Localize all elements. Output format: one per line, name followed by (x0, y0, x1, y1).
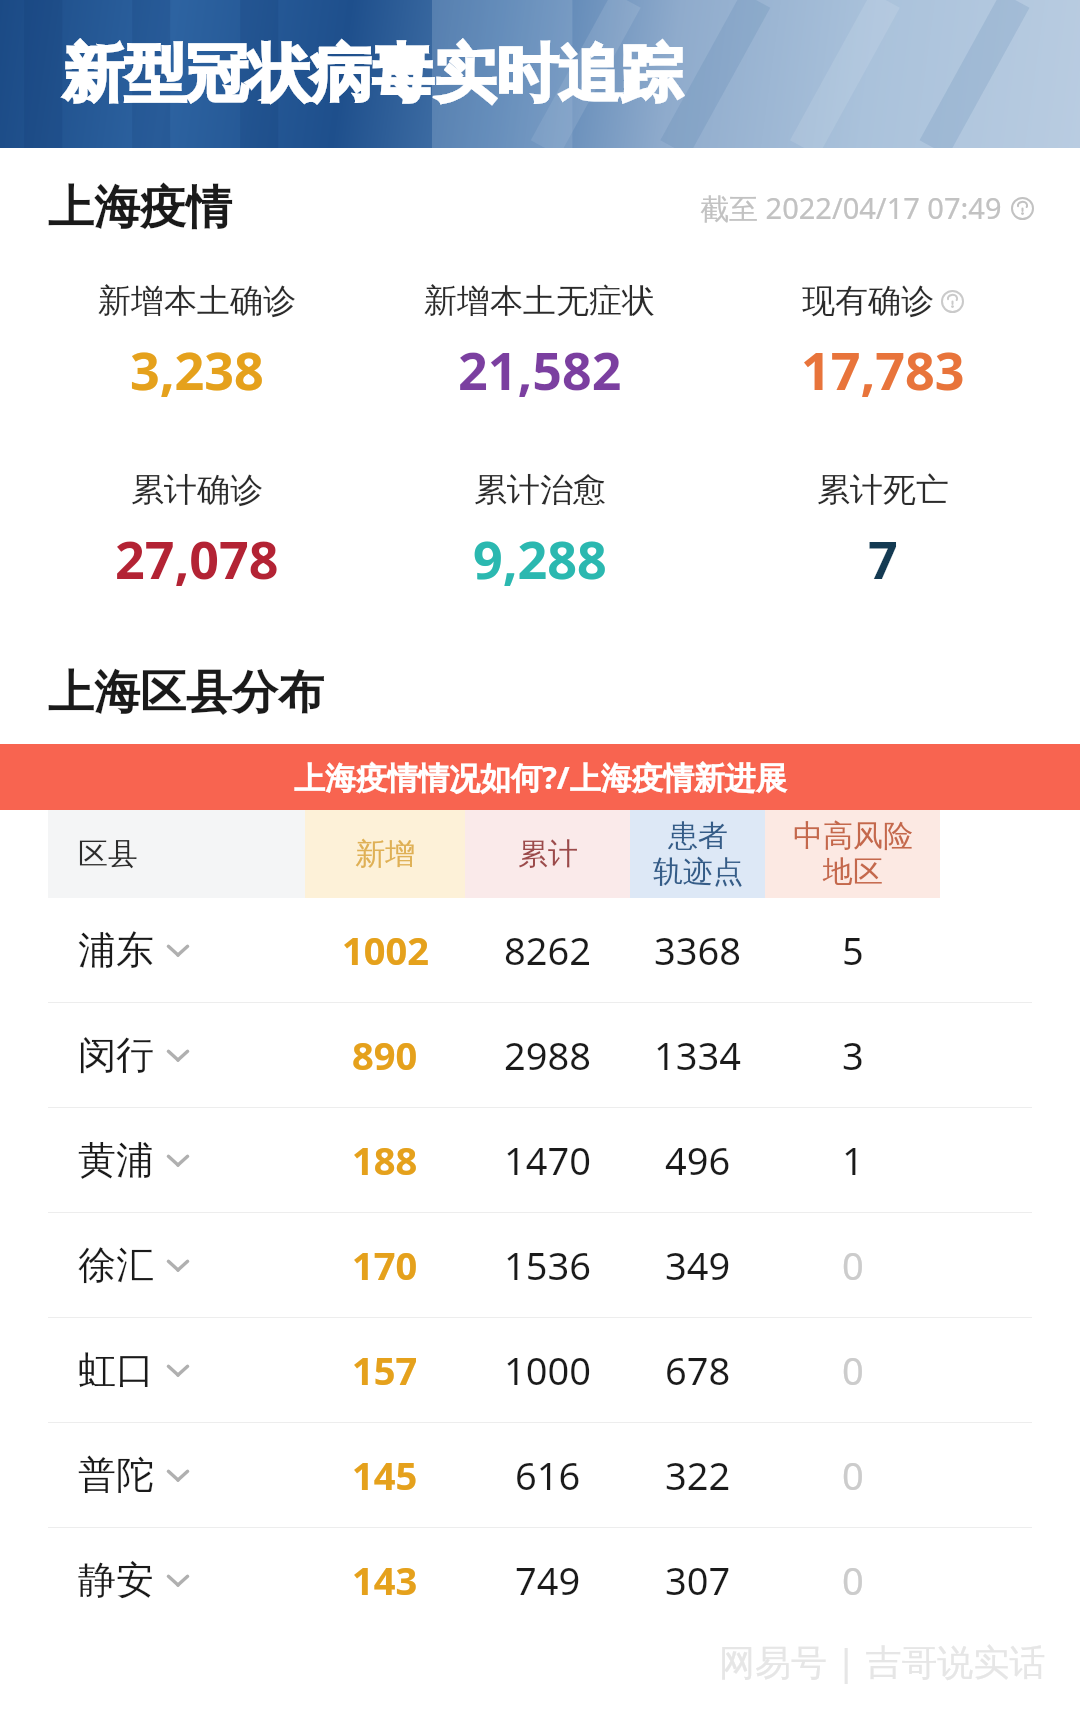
staticText: 0 (842, 1449, 864, 1501)
staticText: 0 (842, 1554, 864, 1606)
staticText: 闵行 (78, 1031, 154, 1079)
button[interactable]: 累计确诊 (26, 469, 368, 594)
staticText: 17,783 (801, 334, 965, 405)
staticText: 145 (352, 1449, 418, 1501)
staticText: 现有确诊 (802, 280, 934, 322)
staticText: 徐汇 (78, 1241, 154, 1289)
button[interactable]: 截至 2022/04/17 07:49 (700, 188, 1034, 228)
staticText: 749 (515, 1554, 581, 1606)
staticText: 7 (868, 523, 898, 594)
staticText: 307 (665, 1554, 731, 1606)
staticText: 新增本土确诊 (98, 280, 296, 322)
button[interactable]: 静安 (0, 1528, 1080, 1632)
staticText: 上海疫情 (48, 179, 232, 237)
button[interactable]: 黄浦 (0, 1108, 1080, 1212)
staticText: 1334 (654, 1029, 741, 1081)
staticText: 9,288 (473, 523, 607, 594)
button[interactable]: 说明 (941, 290, 964, 313)
staticText: 0 (842, 1344, 864, 1396)
staticText: 累计 (518, 835, 578, 873)
staticText: 区县 (78, 835, 138, 873)
button[interactable]: 累计治愈 (368, 469, 711, 594)
staticText: 1002 (342, 924, 429, 976)
button[interactable]: 虹口 (0, 1318, 1080, 1422)
staticText: 1000 (504, 1344, 591, 1396)
staticText: 322 (665, 1449, 731, 1501)
button[interactable]: 闵行 (0, 1003, 1080, 1107)
staticText: 143 (352, 1554, 418, 1606)
staticText: 349 (665, 1239, 731, 1291)
staticText: 浦东 (78, 926, 154, 974)
staticText: 3 (842, 1029, 864, 1081)
button[interactable]: 累计 (465, 810, 630, 898)
staticText: 5 (842, 924, 864, 976)
staticText: 21,582 (458, 334, 622, 405)
button[interactable]: 新增本土确诊 (26, 280, 368, 405)
button[interactable]: 现有确诊 (711, 280, 1054, 405)
staticText: 累计治愈 (474, 469, 606, 511)
button[interactable]: 浦东 (0, 898, 1080, 1002)
staticText: 普陀 (78, 1451, 154, 1499)
staticText: 新增本土无症状 (424, 280, 655, 322)
button[interactable]: 患者 轨迹点 (630, 810, 765, 898)
staticText: 上海区县分布 (48, 664, 324, 722)
staticText: 170 (352, 1239, 418, 1291)
staticText: 188 (352, 1134, 418, 1186)
staticText: 累计确诊 (131, 469, 263, 511)
staticText: 截至 2022/04/17 07:49 (700, 188, 1002, 228)
staticText: 网易号 | 吉哥说实话 (719, 1637, 1046, 1686)
staticText: 患者 轨迹点 (653, 817, 743, 891)
staticText: 1470 (504, 1134, 591, 1186)
button[interactable]: 上海疫情情况如何?/上海疫情新进展 (0, 744, 1080, 810)
staticText: 8262 (504, 924, 591, 976)
staticText: 0 (842, 1239, 864, 1291)
staticText: 黄浦 (78, 1136, 154, 1184)
button[interactable]: 累计死亡 (711, 469, 1054, 594)
staticText: 静安 (78, 1556, 154, 1604)
button[interactable]: 中高风险 地区 (765, 810, 940, 898)
staticText: 3368 (654, 924, 741, 976)
staticText: 2988 (504, 1029, 591, 1081)
staticText: 上海疫情情况如何?/上海疫情新进展 (294, 756, 787, 798)
staticText: 新型冠状病毒实时追踪 (62, 35, 682, 113)
staticText: 中高风险 地区 (793, 817, 913, 891)
button[interactable]: 新增 (305, 810, 465, 898)
staticText: 3,238 (130, 334, 264, 405)
staticText: 27,078 (115, 523, 279, 594)
staticText: 616 (515, 1449, 581, 1501)
button[interactable]: 新增本土无症状 (368, 280, 711, 405)
staticText: 累计死亡 (817, 469, 949, 511)
button[interactable]: 说明 (1011, 197, 1034, 220)
button[interactable]: 徐汇 (0, 1213, 1080, 1317)
button[interactable]: 区县 (48, 810, 305, 898)
staticText: 新增 (355, 835, 415, 873)
staticText: 虹口 (78, 1346, 154, 1394)
staticText: 496 (665, 1134, 731, 1186)
staticText: 157 (352, 1344, 418, 1396)
staticText: 678 (665, 1344, 731, 1396)
staticText: 1 (842, 1134, 864, 1186)
staticText: 890 (352, 1029, 418, 1081)
staticText: 1536 (504, 1239, 591, 1291)
button[interactable]: 普陀 (0, 1423, 1080, 1527)
